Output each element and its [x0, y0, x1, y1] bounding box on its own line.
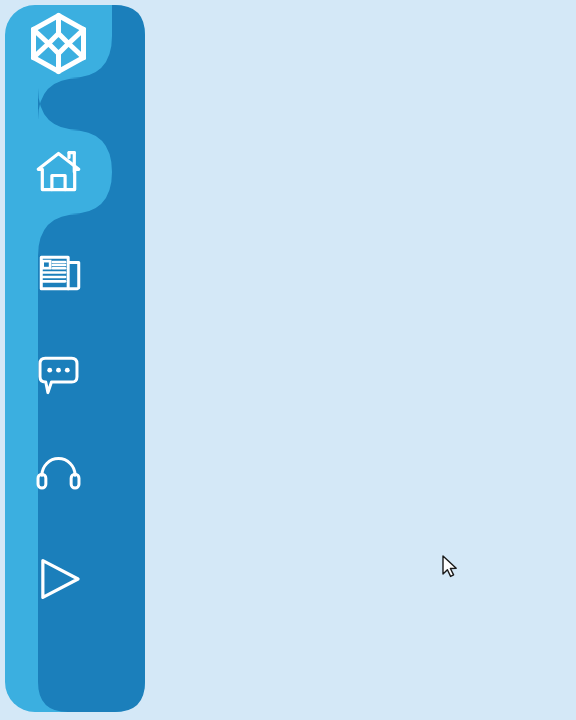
button[interactable]: Messages	[5, 333, 112, 417]
button[interactable]: Home	[5, 130, 112, 214]
button[interactable]: CodePen home	[5, 5, 112, 78]
button[interactable]: News	[5, 231, 112, 315]
button[interactable]: Videos	[5, 537, 112, 621]
button[interactable]: Audio	[5, 435, 112, 519]
